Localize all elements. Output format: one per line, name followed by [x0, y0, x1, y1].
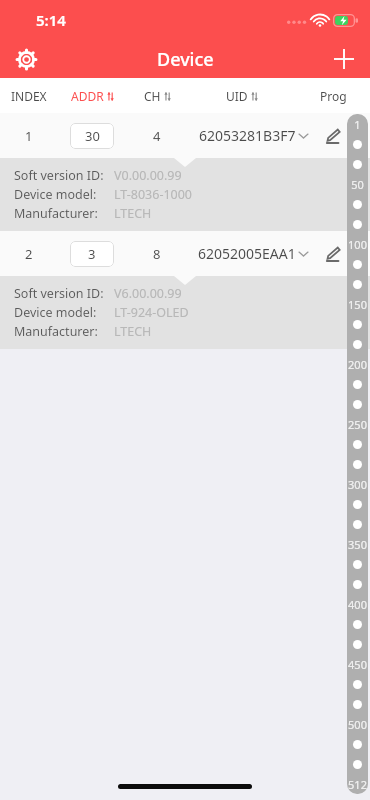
staticText: V6.00.00.99: [114, 285, 182, 302]
staticText: Soft version ID:: [14, 167, 104, 184]
staticText: 2: [25, 245, 33, 263]
staticText: 350: [348, 537, 367, 552]
staticText: 3: [88, 245, 96, 263]
button[interactable]: 1: [0, 113, 370, 158]
button[interactable]: UID: [188, 88, 296, 104]
button[interactable]: ADDR: [58, 88, 126, 104]
staticText: 5:14: [36, 10, 66, 30]
staticText: INDEX: [11, 88, 47, 104]
staticText: 8: [153, 245, 161, 263]
staticText: LT-8036-1000: [114, 186, 193, 203]
staticText: 512: [348, 777, 367, 792]
button[interactable]: 2: [0, 231, 370, 276]
button[interactable]: Edit: [318, 113, 370, 158]
staticText: Manufacturer:: [14, 205, 98, 222]
staticText: LT-924-OLED: [114, 304, 189, 321]
staticText: Device model:: [14, 304, 97, 321]
button[interactable]: 62053281B3F7: [188, 126, 318, 145]
button[interactable]: Settings: [8, 41, 44, 77]
staticText: Device: [157, 47, 214, 72]
button[interactable]: 3: [70, 241, 114, 267]
staticText: 250: [348, 417, 367, 432]
staticText: 62053281B3F7: [199, 126, 296, 145]
staticText: V0.00.00.99: [114, 167, 182, 184]
staticText: 50: [351, 177, 364, 192]
staticText: 30: [85, 127, 100, 145]
button[interactable]: CH: [126, 88, 188, 104]
staticText: 200: [348, 357, 367, 372]
staticText: 450: [348, 657, 367, 672]
staticText: 4: [153, 127, 161, 145]
staticText: 150: [348, 297, 367, 312]
staticText: UID: [226, 88, 248, 104]
staticText: 300: [348, 477, 367, 492]
staticText: 100: [348, 237, 367, 252]
button[interactable]: 62052005EAA1: [188, 244, 318, 263]
staticText: LTECH: [114, 205, 152, 222]
staticText: 1: [25, 127, 33, 145]
button[interactable]: Add device: [326, 41, 362, 77]
button[interactable]: 30: [70, 123, 114, 149]
staticText: Soft version ID:: [14, 285, 104, 302]
staticText: CH: [144, 88, 161, 104]
staticText: LTECH: [114, 323, 152, 340]
staticText: 62052005EAA1: [198, 244, 296, 263]
staticText: Manufacturer:: [14, 323, 98, 340]
button[interactable]: Edit: [318, 231, 370, 276]
staticText: 1: [354, 117, 361, 132]
staticText: 400: [348, 597, 367, 612]
staticText: 500: [348, 717, 367, 732]
staticText: Device model:: [14, 186, 97, 203]
button[interactable]: Address index scrollbar: [347, 114, 368, 794]
staticText: ADDR: [71, 88, 104, 104]
staticText: Prog: [320, 88, 347, 104]
